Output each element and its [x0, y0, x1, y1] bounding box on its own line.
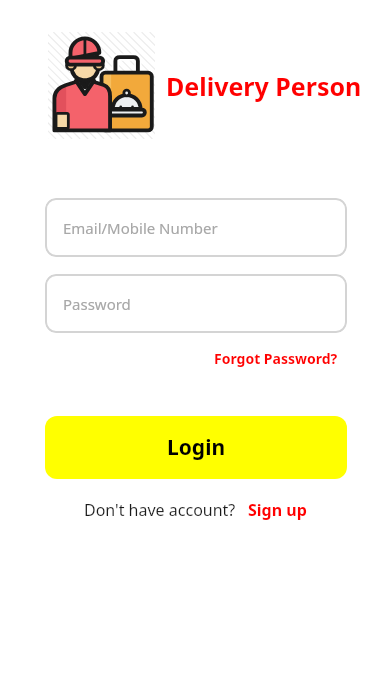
staticText: Forgot Password?	[214, 349, 338, 368]
staticText: Delivery Person	[166, 69, 362, 103]
staticText: Sign up	[248, 499, 307, 521]
button[interactable]: Password	[45, 274, 347, 333]
staticText: Don't have account?	[84, 499, 236, 521]
button[interactable]: Login	[45, 416, 347, 479]
staticText: Login	[167, 433, 226, 462]
button[interactable]: Forgot Password?	[212, 347, 340, 370]
staticText: Email/Mobile Number	[63, 218, 218, 238]
button[interactable]: Email/Mobile Number	[45, 198, 347, 257]
button[interactable]: Sign up	[246, 497, 309, 523]
staticText: Password	[63, 294, 131, 314]
